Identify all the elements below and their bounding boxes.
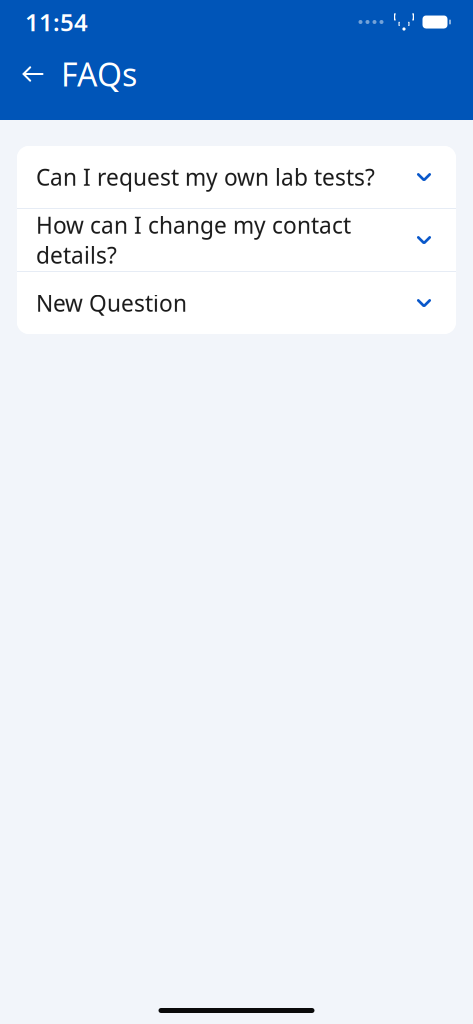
staticText: How can I change my contact details? — [36, 210, 351, 270]
button[interactable]: New Question — [17, 272, 456, 334]
button[interactable]: Back — [0, 44, 56, 104]
button[interactable]: Can I request my own lab tests? — [17, 146, 456, 208]
button[interactable]: How can I change my contact details? — [17, 209, 456, 271]
staticText: Can I request my own lab tests? — [36, 162, 375, 192]
staticText: FAQs — [61, 53, 137, 95]
staticText: New Question — [36, 288, 187, 318]
staticText: 11:54 — [25, 6, 88, 38]
